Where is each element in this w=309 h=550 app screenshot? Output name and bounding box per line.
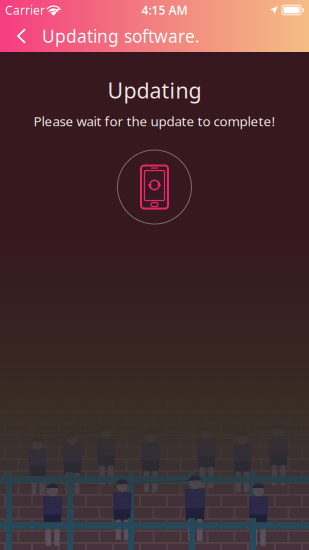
staticText: 4:15 AM — [141, 2, 187, 18]
staticText: Carrier — [5, 2, 45, 18]
staticText: Please wait for the update to complete! — [33, 112, 275, 130]
staticText: Updating software. — [42, 24, 200, 47]
button[interactable]: Back — [0, 20, 33, 52]
staticText: Updating — [107, 76, 201, 104]
